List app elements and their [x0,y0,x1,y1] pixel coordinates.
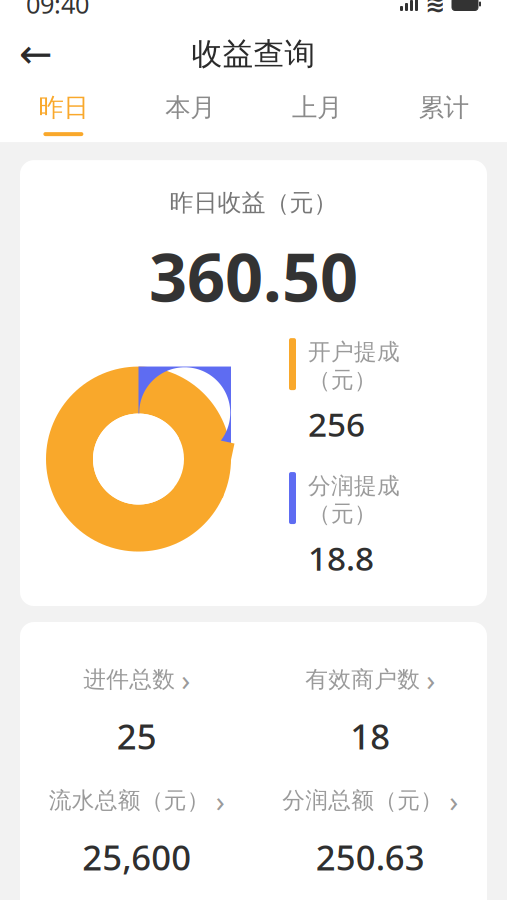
staticText: 分润提成（元） [308,472,400,528]
staticText: 360.50 [149,232,358,320]
staticText: 25 [117,713,157,759]
staticText: 昨日收益（元） [169,188,337,218]
button[interactable]: 本月 [127,82,254,142]
staticText: 分润总额（元） [282,787,443,814]
button[interactable]: 进件总数 [20,656,253,763]
button[interactable]: 流水总额（元） [20,777,253,884]
button[interactable]: Back [14,32,58,76]
staticText: 收益查询 [191,35,315,73]
staticText: 开户提成（元） [308,338,400,394]
staticText: 昨日 [38,92,88,123]
staticText: › [449,781,458,820]
staticText: ≋ [425,0,445,18]
staticText: 18 [350,713,390,759]
staticText: 累计 [419,92,469,123]
staticText: 18.8 [308,536,374,580]
staticText: 进件总数 [83,666,175,693]
staticText: 上月 [292,92,342,123]
staticText: › [181,660,190,699]
staticText: 有效商户数 [305,666,420,693]
staticText: › [426,660,435,699]
staticText: 流水总额（元） [49,787,210,814]
staticText: 09:40 [26,0,89,21]
button[interactable]: 有效商户数 [253,656,487,763]
button[interactable]: 上月 [253,82,380,142]
staticText: ← [19,31,53,77]
staticText: 250.63 [316,834,425,880]
staticText: 256 [308,402,365,446]
button[interactable]: 分润总额（元） [253,777,487,884]
staticText: 本月 [165,92,215,123]
button[interactable]: 累计 [380,82,507,142]
staticText: 25,600 [82,834,191,880]
staticText: › [216,781,225,820]
button[interactable]: 昨日 [0,82,127,142]
